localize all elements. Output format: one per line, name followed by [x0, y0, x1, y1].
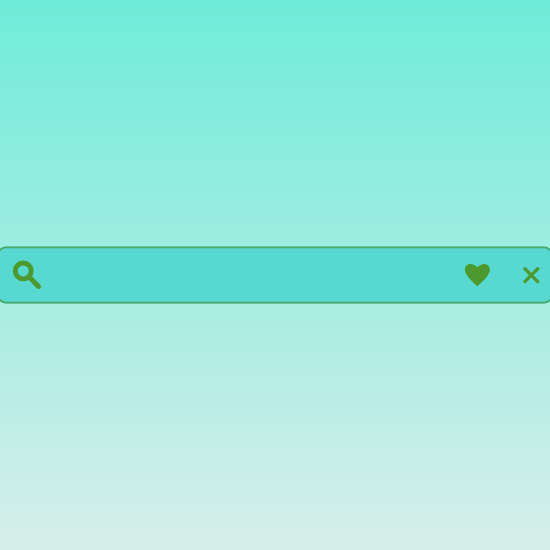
- button[interactable]: Favorite: [456, 254, 498, 296]
- button[interactable]: Close: [515, 258, 549, 292]
- button[interactable]: Search field: [0, 246, 550, 304]
- button[interactable]: Search: [2, 252, 48, 298]
